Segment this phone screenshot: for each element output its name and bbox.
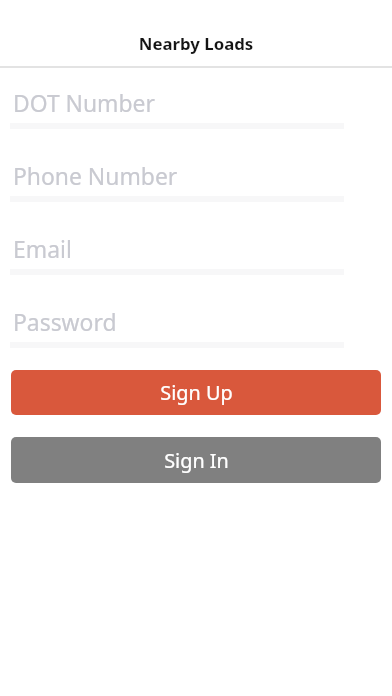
staticText: Sign Up: [160, 379, 233, 406]
button[interactable]: Sign Up: [11, 370, 381, 415]
staticText: Sign In: [164, 447, 229, 474]
button[interactable]: Sign In: [11, 437, 381, 483]
staticText: DOT Number: [13, 88, 155, 119]
staticText: Password: [13, 307, 117, 338]
staticText: Nearby Loads: [0, 32, 392, 55]
button[interactable]: DOT Number: [10, 71, 344, 129]
staticText: Phone Number: [13, 161, 178, 192]
staticText: Email: [13, 234, 72, 265]
button[interactable]: Phone Number: [10, 144, 344, 202]
button[interactable]: Email: [10, 217, 344, 275]
button[interactable]: Password: [10, 290, 344, 348]
